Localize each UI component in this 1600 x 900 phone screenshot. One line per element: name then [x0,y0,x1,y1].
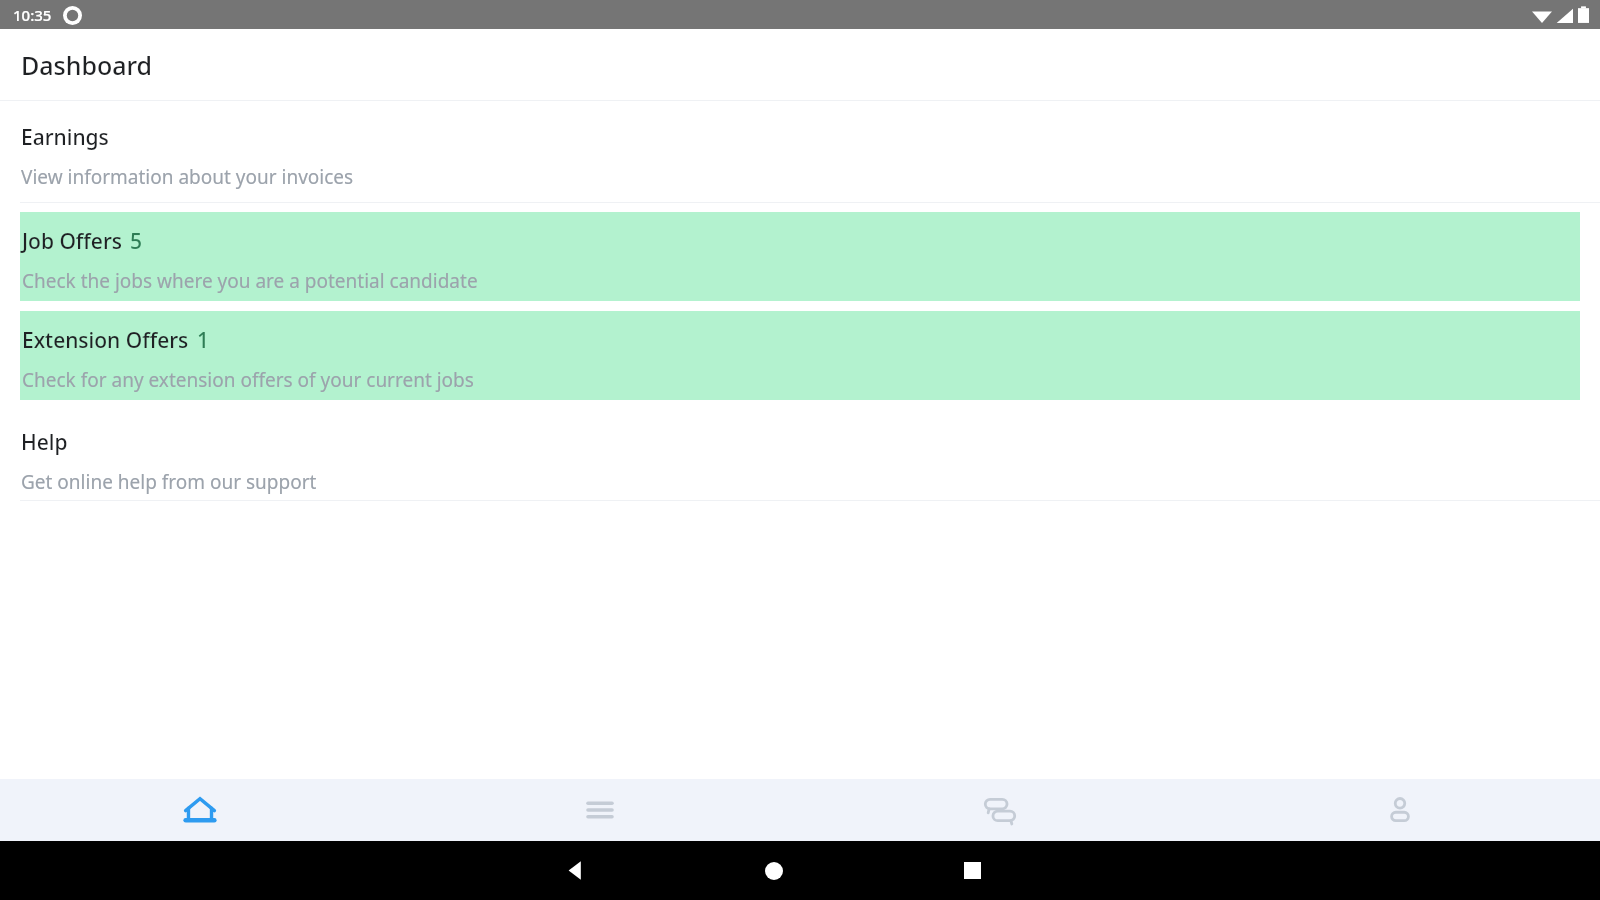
staticText: 1 [197,326,210,355]
button[interactable]: Home [585,841,783,900]
staticText: 10:35 [13,5,52,25]
staticText: Earnings [21,123,109,152]
button[interactable]: Extension Offers [20,311,1580,400]
button[interactable]: Job Offers [20,212,1580,301]
staticText: Check for any extension offers of your c… [22,367,474,393]
staticText: Get online help from our support [21,469,317,495]
staticText: 5 [130,227,143,256]
button[interactable]: Help [0,406,1600,500]
staticText: Check the jobs where you are a potential… [22,268,478,294]
button[interactable]: Profile [1200,779,1600,841]
staticText: Extension Offers [22,326,189,355]
staticText: View information about your invoices [21,164,354,190]
button[interactable]: Recents [783,841,981,900]
button[interactable]: List [400,779,800,841]
staticText: Help [21,428,68,457]
button[interactable]: Messages [800,779,1200,841]
button[interactable]: Home [0,779,400,841]
staticText: Job Offers [22,227,122,256]
button[interactable]: Earnings [0,101,1600,202]
staticText: Dashboard [21,48,153,82]
button[interactable]: Back [0,841,585,900]
